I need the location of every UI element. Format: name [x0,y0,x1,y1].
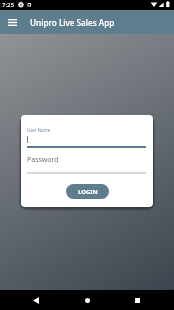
button[interactable]: Recent apps [126,290,148,310]
button[interactable]: Back [25,290,47,310]
staticText: User Name [27,127,51,133]
staticText: 7:25 [2,1,14,9]
staticText: Password [27,155,59,165]
button[interactable]: Home [76,290,98,310]
button[interactable]: LOGIN [66,184,109,199]
staticText: Unipro Live Sales App [30,17,115,28]
button[interactable]: Open navigation menu [0,10,24,34]
staticText: LOGIN [78,188,98,196]
